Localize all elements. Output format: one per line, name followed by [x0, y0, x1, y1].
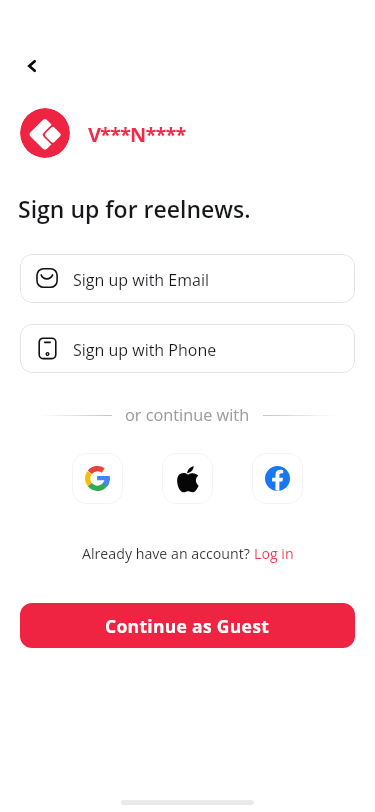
staticText: Already have an account?: [82, 544, 254, 563]
staticText: Continue as Guest: [105, 614, 270, 638]
button[interactable]: Sign up with Google: [72, 453, 123, 504]
staticText: Sign up with Phone: [73, 339, 217, 361]
button[interactable]: Sign up with Phone: [20, 324, 355, 373]
button[interactable]: Sign up with Apple: [162, 453, 213, 504]
button[interactable]: Sign up with Facebook: [252, 453, 303, 504]
button[interactable]: Sign up with Email: [20, 254, 355, 303]
staticText: or continue with: [125, 404, 250, 426]
staticText: V***N****: [88, 121, 186, 148]
button[interactable]: Log in: [254, 544, 294, 563]
button[interactable]: Continue as Guest: [20, 603, 355, 648]
staticText: Sign up for reelnews.: [18, 193, 251, 224]
button[interactable]: Back: [14, 48, 50, 84]
staticText: Log in: [254, 544, 294, 563]
staticText: Sign up with Email: [73, 269, 210, 291]
